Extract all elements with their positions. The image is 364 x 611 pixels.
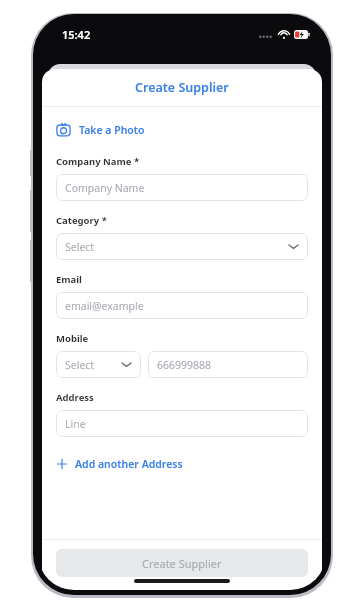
- staticText: Create Supplier: [142, 556, 222, 571]
- staticText: Line: [65, 417, 86, 431]
- staticText: Add another Address: [75, 457, 183, 471]
- staticText: Company Name *: [56, 155, 140, 168]
- staticText: Email: [56, 273, 82, 286]
- button[interactable]: Select: [56, 351, 141, 378]
- staticText: Select: [65, 240, 95, 254]
- button[interactable]: Line: [56, 410, 308, 437]
- staticText: email@example: [65, 299, 144, 313]
- button[interactable]: Take a Photo: [56, 120, 145, 139]
- button[interactable]: Select: [56, 233, 308, 260]
- staticText: Category *: [56, 214, 107, 227]
- staticText: Address: [56, 391, 94, 404]
- button[interactable]: Create Supplier: [56, 549, 308, 577]
- staticText: Select: [65, 358, 95, 372]
- staticText: Mobile: [56, 332, 89, 345]
- staticText: 666999888: [157, 358, 212, 372]
- button[interactable]: email@example: [56, 292, 308, 319]
- button[interactable]: Company Name: [56, 174, 308, 201]
- staticText: Create Supplier: [135, 79, 229, 96]
- button[interactable]: Create Supplier: [42, 69, 322, 106]
- staticText: Take a Photo: [79, 123, 145, 137]
- staticText: 15:42: [62, 27, 91, 42]
- staticText: Company Name: [65, 181, 145, 195]
- button[interactable]: 666999888: [148, 351, 308, 378]
- button[interactable]: Add another Address: [56, 455, 183, 473]
